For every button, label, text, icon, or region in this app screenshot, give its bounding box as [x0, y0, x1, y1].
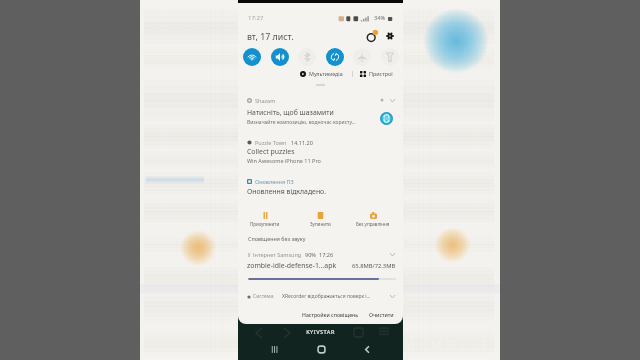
button[interactable]: Оновлення ПЗ: [238, 175, 403, 233]
staticText: Shazam: [255, 97, 276, 104]
staticText: KYIVSTAR: [238, 328, 403, 336]
button[interactable]: Bluetooth: [298, 48, 316, 66]
staticText: 17:27: [248, 14, 264, 22]
staticText: Очистити: [369, 311, 394, 318]
button[interactable]: Puzzle Town: [238, 131, 403, 167]
staticText: Зупинити: [310, 221, 331, 227]
staticText: Сповіщення без звуку: [248, 235, 306, 242]
button[interactable]: Home: [310, 338, 332, 360]
staticText: XRecorder відображається поверх і…: [282, 293, 371, 300]
button[interactable]: Settings: [382, 28, 398, 44]
staticText: zombie-idle-defense-1…apk: [247, 261, 337, 270]
button[interactable]: Sound: [271, 48, 289, 66]
staticText: Collect puzzles: [247, 147, 295, 156]
staticText: Настройки сповіщень: [302, 311, 359, 318]
staticText: Без управління: [356, 221, 390, 227]
button[interactable]: Wi-Fi: [243, 48, 261, 66]
staticText: Інтернет Samsung: [253, 251, 302, 258]
staticText: Win Awesome iPhone 11 Pro: [247, 157, 321, 164]
button[interactable]: Back: [356, 338, 378, 360]
staticText: 34%: [374, 14, 386, 22]
button[interactable]: Auto rotate: [326, 48, 344, 66]
button[interactable]: Зупинити: [298, 212, 342, 232]
button[interactable]: Search: [364, 28, 380, 44]
staticText: Визначайте композицію, водночас користу…: [247, 119, 356, 126]
button[interactable]: Інтернет Samsung: [238, 248, 403, 290]
button[interactable]: Пристрої: [358, 68, 395, 79]
staticText: Система: [253, 293, 274, 300]
staticText: Натисніть, щоб шазамити: [247, 108, 334, 117]
staticText: 90%: [305, 251, 316, 258]
staticText: Оновлення відкладено.: [247, 187, 327, 196]
staticText: Оновлення ПЗ: [255, 178, 294, 185]
staticText: 65.8MB/72.3MB: [352, 262, 396, 270]
button[interactable]: Призупинити: [243, 212, 287, 232]
staticText: Мультимедіа: [309, 70, 343, 77]
button[interactable]: Без управління: [351, 212, 395, 232]
button[interactable]: Shazam: [238, 91, 403, 131]
button[interactable]: Настройки сповіщень: [299, 308, 362, 321]
button[interactable]: Recent apps: [263, 338, 285, 360]
button[interactable]: Мультимедіа: [298, 68, 345, 79]
staticText: Пристрої: [369, 70, 393, 77]
staticText: Призупинити: [250, 221, 280, 227]
button[interactable]: Airplane mode: [353, 48, 371, 66]
staticText: вт, 17 лист.: [247, 31, 294, 43]
button[interactable]: Очистити: [366, 308, 397, 321]
staticText: 14.11.20: [291, 139, 313, 146]
staticText: 17:26: [319, 251, 334, 258]
button[interactable]: Flashlight: [381, 48, 399, 66]
staticText: Puzzle Town: [255, 139, 287, 146]
